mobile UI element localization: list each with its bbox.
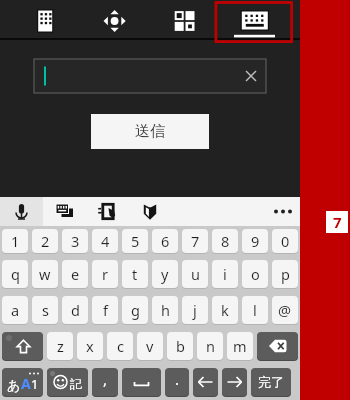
button[interactable]: Space [122,368,161,396]
button[interactable]: b [167,332,193,360]
button[interactable]: 0 [272,229,298,253]
button[interactable]: v [137,332,163,360]
staticText: o [251,264,260,284]
button[interactable]: j [182,296,208,324]
button[interactable]: 2 [32,229,58,253]
button[interactable]: 4 [92,229,118,253]
staticText: h [161,300,170,320]
staticText: w [39,264,51,284]
button[interactable]: 6 [152,229,178,253]
button[interactable]: z [47,332,73,360]
staticText: 送信 [135,122,165,141]
button[interactable]: l [242,296,268,324]
staticText: 7 [191,231,200,251]
staticText: 8 [221,231,230,251]
button[interactable]: 完了 [251,368,291,396]
staticText: j [193,300,197,320]
staticText: 0 [281,231,290,251]
button[interactable]: s [32,296,58,324]
button[interactable]: g [122,296,148,324]
button[interactable]: Clear [236,61,266,91]
staticText: p [281,264,290,284]
staticText: 7 [333,212,342,232]
button[interactable]: p [272,260,298,288]
button[interactable]: t [122,260,148,288]
button[interactable]: More [260,197,300,226]
button[interactable]: 5 [122,229,148,253]
staticText: g [131,300,140,320]
button[interactable]: 7 [182,229,208,253]
button[interactable]: 8 [212,229,238,253]
staticText: . [175,369,180,389]
staticText: d [71,300,80,320]
button[interactable]: h [152,296,178,324]
button[interactable]: Period [165,368,189,396]
button[interactable]: @ [272,296,298,324]
staticText: 2 [41,231,50,251]
staticText: あ [7,377,21,393]
button[interactable]: 9 [242,229,268,253]
staticText: k [221,300,229,320]
button[interactable]: Apps [150,0,225,38]
staticText: 5 [131,231,140,251]
staticText: , [103,369,108,389]
button[interactable]: m [227,332,253,360]
button[interactable]: u [182,260,208,288]
staticText: q [11,264,20,284]
button[interactable]: Emoji [47,368,88,396]
staticText: 4 [101,231,110,251]
staticText: r [102,264,108,284]
button[interactable]: o [242,260,268,288]
button[interactable]: a [2,296,28,324]
staticText: 記 [70,376,82,391]
button[interactable]: k [212,296,238,324]
staticText: 完了 [258,374,284,390]
button[interactable]: Right [222,368,247,396]
staticText: v [146,336,154,356]
staticText: A [21,374,31,393]
button[interactable]: 3 [62,229,88,253]
button[interactable]: f [92,296,118,324]
staticText: c [117,336,124,356]
staticText: u [191,264,200,284]
staticText: n [206,336,215,356]
button[interactable]: w [32,260,58,288]
button[interactable]: Clear [34,59,266,93]
button[interactable]: r [92,260,118,288]
button[interactable]: Input mode [2,368,43,396]
button[interactable]: Backspace [257,332,298,360]
button[interactable]: y [152,260,178,288]
staticText: 3 [71,231,80,251]
button[interactable]: Comma [92,368,118,396]
button[interactable]: d [62,296,88,324]
button[interactable]: c [107,332,133,360]
staticText: z [57,336,64,356]
staticText: 1 [11,231,20,251]
button[interactable]: D-pad [75,0,150,38]
button[interactable]: Shift [2,332,43,360]
button[interactable]: n [197,332,223,360]
button[interactable]: Switch keyboard [43,197,87,226]
staticText: b [176,336,185,356]
staticText: t [132,264,138,284]
button[interactable]: 1 [2,229,28,253]
button[interactable]: 送信 [91,114,209,149]
button[interactable]: Left [193,368,218,396]
staticText: f [103,300,108,320]
staticText: i [223,264,227,284]
staticText: l [253,300,257,320]
staticText: s [42,300,49,320]
button[interactable]: Voice input [0,197,43,226]
staticText: e [71,264,80,284]
button[interactable]: q [2,260,28,288]
button[interactable]: e [62,260,88,288]
staticText: 9 [251,231,260,251]
button[interactable]: Keyboard [225,0,300,38]
staticText: m [233,336,247,356]
button[interactable]: Wakaba [129,197,171,226]
button[interactable]: Remote [0,0,75,38]
staticText: y [161,264,169,284]
button[interactable]: x [77,332,103,360]
button[interactable]: Handwriting [87,197,129,226]
button[interactable]: i [212,260,238,288]
